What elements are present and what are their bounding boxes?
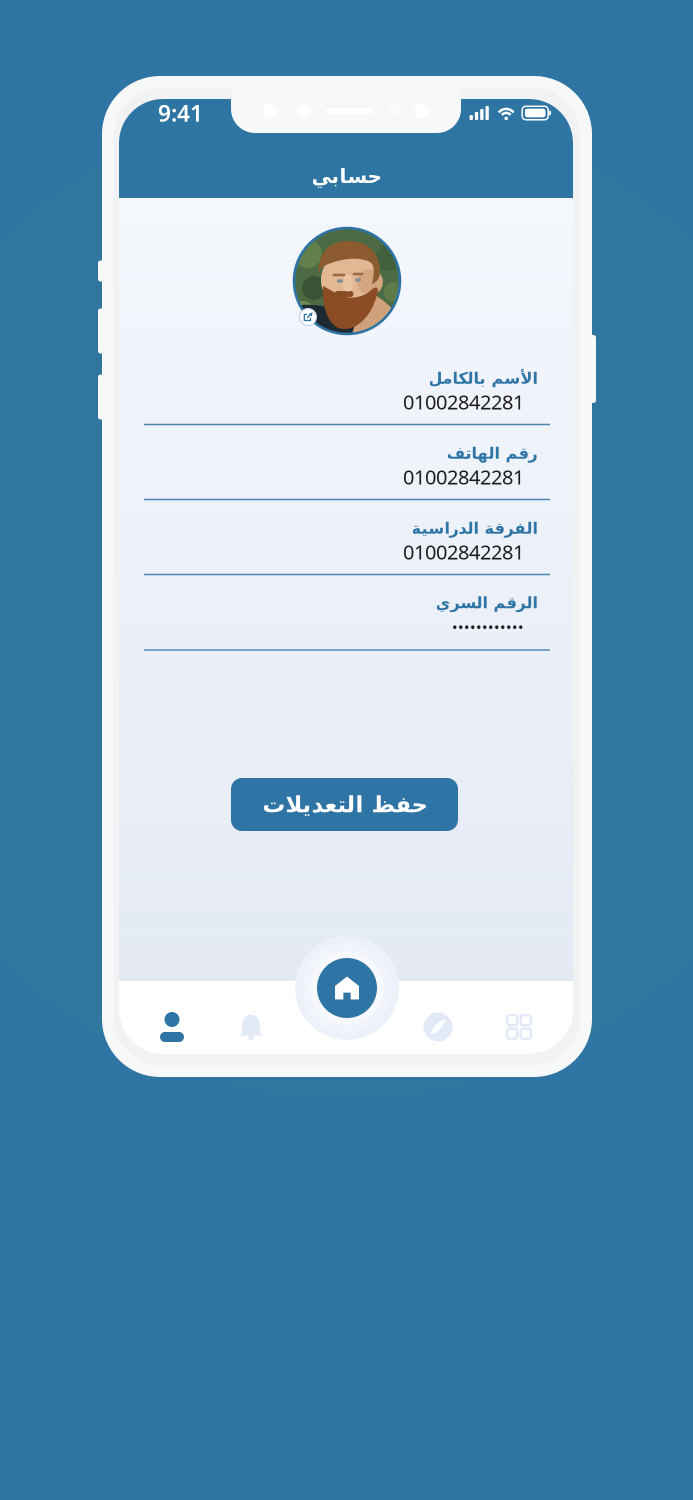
staticText: •••••••••••• (452, 617, 524, 637)
button[interactable]: Profile (136, 990, 208, 1063)
staticText: حفظ التعديلات (262, 792, 427, 817)
button[interactable]: More (483, 990, 555, 1063)
staticText: 9:41 (158, 98, 203, 128)
staticText: 01002842281 (403, 463, 524, 490)
button[interactable]: Change photo (299, 308, 316, 325)
staticText: 01002842281 (403, 538, 524, 565)
button[interactable]: Explore (402, 990, 474, 1063)
staticText: 01002842281 (403, 388, 524, 415)
staticText: الفرقة الدراسية (411, 519, 537, 537)
button[interactable]: حفظ التعديلات (231, 778, 458, 831)
staticText: الأسم بالكامل (428, 369, 537, 387)
staticText: رقم الهاتف (446, 444, 537, 462)
staticText: حسابي (311, 165, 381, 187)
button[interactable]: Notifications (215, 990, 287, 1063)
staticText: الرقم السري (435, 594, 537, 612)
